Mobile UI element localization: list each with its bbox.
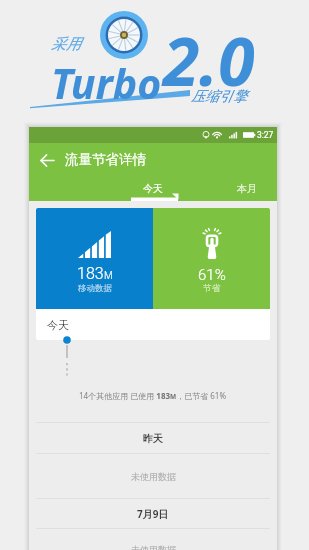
staticText: 昨天 <box>143 432 163 445</box>
button[interactable]: 未使用数据 <box>29 454 277 498</box>
staticText: 采用 <box>51 35 81 54</box>
staticText: 压缩引擎 <box>191 88 247 106</box>
staticText: 移动数据 <box>78 283 112 294</box>
staticText: 节省 <box>203 283 220 294</box>
button[interactable]: 未使用数据 <box>29 529 277 550</box>
button[interactable]: 7月9日 <box>29 499 277 528</box>
button[interactable]: Back <box>29 143 65 178</box>
button[interactable]: 183 <box>36 208 153 309</box>
staticText: 本月 <box>237 182 257 195</box>
staticText: Turbo <box>51 55 162 111</box>
button[interactable]: 61% <box>153 208 270 309</box>
staticText: 61% <box>198 266 226 284</box>
button[interactable]: 本月 <box>219 178 275 201</box>
button[interactable]: 今天 <box>117 178 189 201</box>
staticText: 2.0 <box>163 15 255 105</box>
staticText: 183 <box>77 264 104 283</box>
staticText: 流量节省详情 <box>65 151 146 168</box>
staticText: 今天 <box>47 318 69 332</box>
button[interactable]: 昨天 <box>29 423 277 453</box>
staticText: 未使用数据 <box>131 544 176 550</box>
staticText: 3:27 <box>257 130 274 140</box>
staticText: 14个其他应用 已使用 183M，已节省 61% <box>79 390 227 401</box>
staticText: 未使用数据 <box>131 471 176 482</box>
staticText: 7月9日 <box>137 507 169 521</box>
staticText: 今天 <box>143 182 163 195</box>
staticText: M <box>104 270 113 282</box>
